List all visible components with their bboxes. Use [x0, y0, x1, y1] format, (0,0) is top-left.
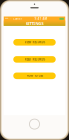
button[interactable]: VIEW RECORDS: [13, 39, 56, 46]
staticText: •••◦◦ Carrier: [5, 17, 22, 20]
button[interactable]: RESET RECORDS: [13, 56, 56, 63]
staticText: 9:41 AM: [35, 17, 47, 20]
button[interactable]: Home: [29, 119, 39, 129]
staticText: SETTINGS: [25, 21, 43, 26]
staticText: RESET RECORDS: [24, 58, 44, 61]
button[interactable]: HOW TO USE: [13, 72, 56, 79]
staticText: VIEW RECORDS: [24, 40, 44, 44]
staticText: HOW TO USE: [26, 74, 42, 77]
